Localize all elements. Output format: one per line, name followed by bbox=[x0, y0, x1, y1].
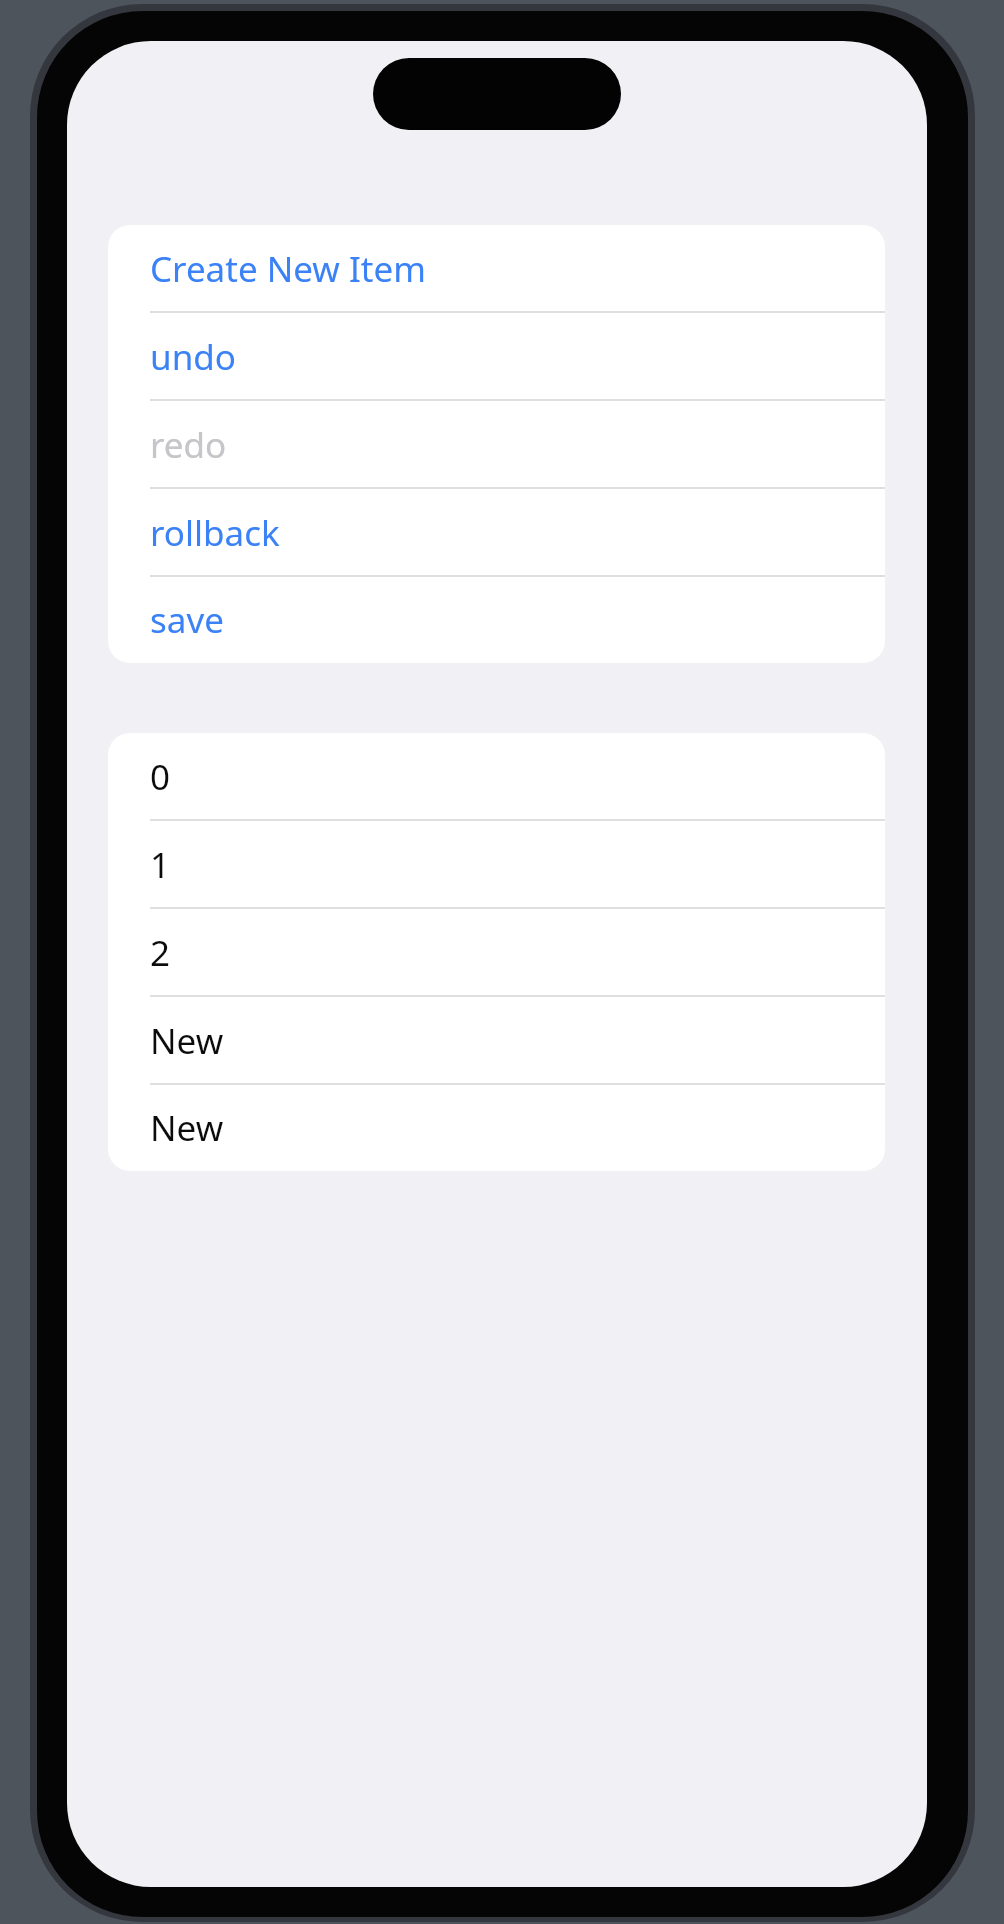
button[interactable]: 0 bbox=[108, 733, 885, 821]
staticText: save bbox=[150, 596, 224, 644]
button[interactable]: 1 bbox=[108, 821, 885, 909]
staticText: New bbox=[150, 1017, 224, 1065]
staticText: Create New Item bbox=[150, 245, 426, 293]
button[interactable]: New bbox=[108, 997, 885, 1085]
button[interactable]: undo bbox=[108, 313, 885, 401]
button[interactable]: redo bbox=[108, 401, 885, 489]
staticText: undo bbox=[150, 333, 236, 381]
staticText: redo bbox=[150, 421, 227, 469]
staticText: 1 bbox=[150, 841, 171, 889]
staticText: 0 bbox=[150, 753, 171, 801]
button[interactable]: Create New Item bbox=[108, 225, 885, 313]
staticText: rollback bbox=[150, 509, 280, 557]
button[interactable]: New bbox=[108, 1085, 885, 1171]
staticText: New bbox=[150, 1104, 224, 1152]
button[interactable]: 2 bbox=[108, 909, 885, 997]
staticText: 2 bbox=[150, 929, 171, 977]
button[interactable]: save bbox=[108, 577, 885, 663]
button[interactable]: rollback bbox=[108, 489, 885, 577]
